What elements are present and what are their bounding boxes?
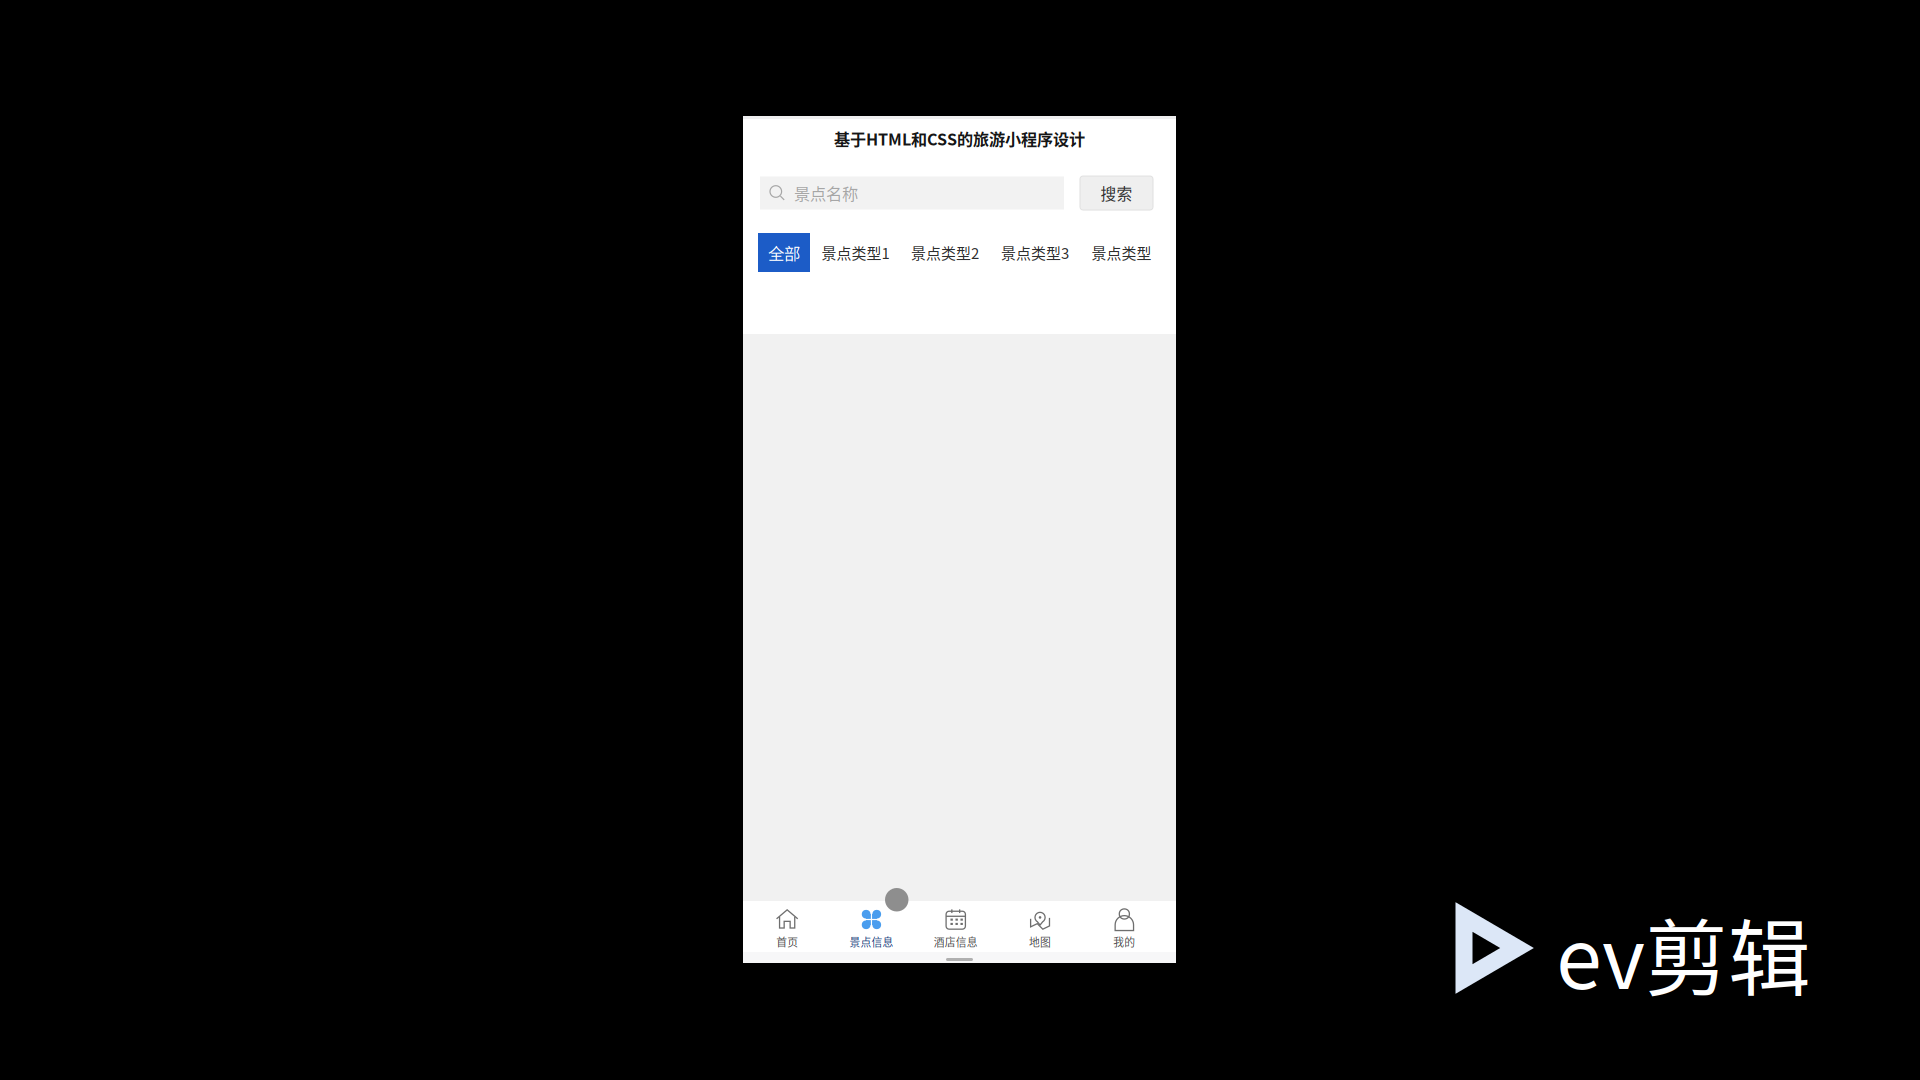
button[interactable]: 全部 <box>758 233 810 272</box>
staticText: 景点类型3 <box>1001 242 1069 263</box>
button[interactable]: 景点信息 <box>829 901 914 952</box>
button[interactable]: 景点类型2 <box>911 233 979 272</box>
staticText: 首页 <box>776 934 798 950</box>
staticText: 搜索 <box>1100 182 1132 204</box>
button[interactable]: 景点类型1 <box>822 233 889 272</box>
button[interactable]: 酒店信息 <box>914 901 998 952</box>
staticText: 景点信息 <box>849 934 893 950</box>
button[interactable]: 我的 <box>1082 901 1166 952</box>
staticText: 景点类型 <box>1091 242 1151 263</box>
staticText: 我的 <box>1113 934 1135 950</box>
button[interactable]: 景点类型3 <box>1001 233 1069 272</box>
staticText: 景点类型2 <box>911 242 979 263</box>
staticText: 景点名称 <box>794 181 858 205</box>
staticText: ev剪辑 <box>1556 893 1811 1013</box>
staticText: 地图 <box>1029 934 1051 950</box>
button[interactable]: 地图 <box>998 901 1082 952</box>
staticText: 全部 <box>768 241 800 264</box>
button[interactable]: 搜索 <box>1080 176 1153 210</box>
button[interactable]: 首页 <box>745 901 829 952</box>
staticText: 酒店信息 <box>934 934 978 950</box>
staticText: 基于HTML和CSS的旅游小程序设计 <box>834 127 1085 150</box>
staticText: 景点类型1 <box>821 242 889 263</box>
button[interactable]: 景点类型 <box>1092 233 1151 272</box>
